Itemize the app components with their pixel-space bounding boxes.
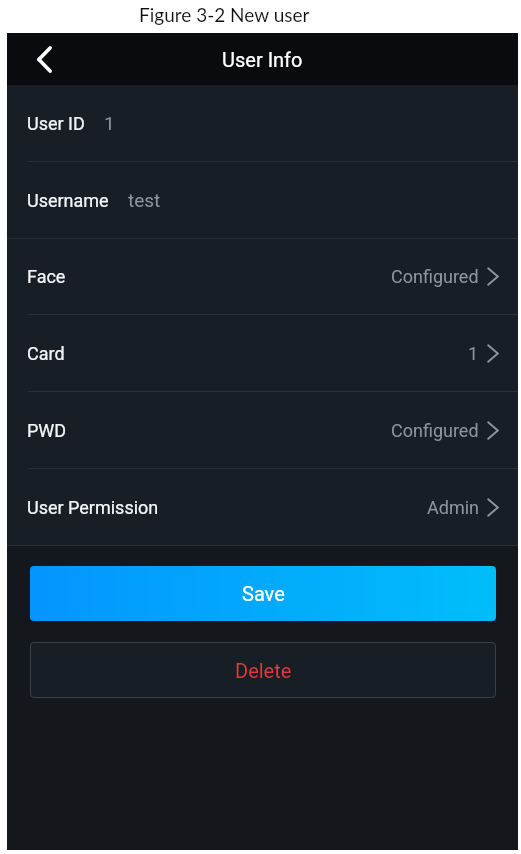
button[interactable]: Username [7,162,518,238]
staticText: Delete [235,659,292,682]
staticText: Figure 3-2 New user [139,3,310,26]
button[interactable]: Face [7,239,518,314]
button[interactable]: Delete [30,642,496,698]
button[interactable]: Card [7,315,518,391]
staticText: Username [27,190,109,211]
staticText: Face [27,266,66,287]
staticText: PWD [27,420,67,441]
button[interactable]: Save [30,566,496,621]
staticText: Admin [427,497,479,518]
button[interactable]: Back [7,33,77,85]
staticText: User Info [222,48,303,71]
button[interactable]: PWD [7,392,518,468]
staticText: Configured [391,266,479,287]
staticText: Card [27,343,65,364]
staticText: test [128,189,161,211]
staticText: Configured [391,420,479,441]
staticText: Save [242,582,285,605]
staticText: User ID [27,113,85,134]
staticText: 1 [468,343,479,364]
button[interactable]: User ID [7,85,518,161]
staticText: User Permission [27,497,159,518]
button[interactable]: User Permission [7,469,518,545]
staticText: 1 [104,112,115,134]
